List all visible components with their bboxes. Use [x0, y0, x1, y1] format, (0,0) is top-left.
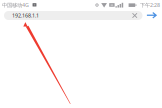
staticText: 192.168.1.1: [12, 12, 39, 19]
staticText: 中国移动4G: [2, 1, 29, 9]
staticText: 下午2:28: [140, 1, 160, 9]
button[interactable]: Go: [146, 12, 162, 19]
button[interactable]: Clear text: [132, 13, 142, 18]
